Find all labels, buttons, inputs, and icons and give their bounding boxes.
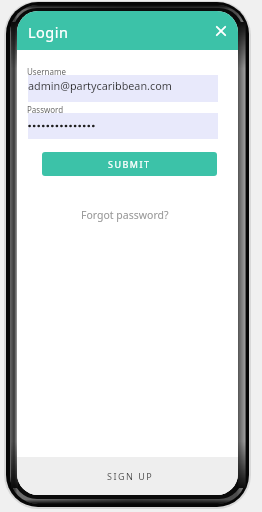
staticText: admin@partycaribbean.com	[28, 78, 172, 93]
button[interactable]: Forgot password?	[75, 203, 175, 227]
button[interactable]: admin@partycaribbean.com	[28, 75, 218, 102]
staticText: Username	[27, 66, 66, 77]
staticText: SIGN UP	[107, 470, 154, 482]
staticText: SUBMIT	[108, 158, 151, 170]
staticText: Forgot password?	[81, 208, 169, 222]
button[interactable]: Close	[208, 18, 233, 43]
staticText: Password	[27, 104, 64, 115]
button[interactable]: Password	[28, 113, 218, 139]
staticText: Login	[28, 22, 69, 42]
button[interactable]: SUBMIT	[42, 152, 217, 176]
button[interactable]: SIGN UP	[17, 457, 238, 495]
